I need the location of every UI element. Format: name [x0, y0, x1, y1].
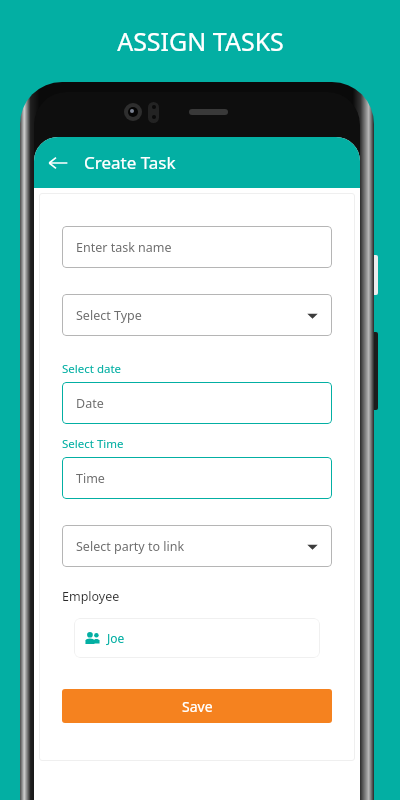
staticText: ASSIGN TASKS	[117, 24, 284, 58]
button[interactable]: Back	[39, 144, 77, 182]
staticText: Select Type	[76, 307, 142, 324]
staticText: Joe	[107, 630, 125, 646]
button[interactable]: Time	[62, 457, 332, 499]
staticText: Enter task name	[76, 239, 172, 256]
staticText: Time	[76, 470, 105, 487]
staticText: Create Task	[84, 151, 176, 174]
staticText: Select party to link	[76, 538, 185, 555]
button[interactable]: Select Type	[62, 294, 332, 336]
staticText: Date	[76, 395, 104, 412]
button[interactable]: Enter task name	[62, 226, 332, 268]
staticText: Save	[182, 697, 213, 716]
staticText: Select Time	[62, 436, 124, 452]
button[interactable]: Select party to link	[62, 525, 332, 567]
staticText: Employee	[62, 588, 120, 605]
button[interactable]: Save	[62, 689, 332, 723]
button[interactable]: Date	[62, 382, 332, 424]
staticText: Select date	[62, 361, 122, 377]
button[interactable]: Joe	[74, 618, 320, 658]
